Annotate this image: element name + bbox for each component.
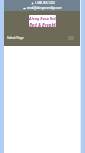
staticText: Bed & Breakfast bbox=[29, 22, 56, 27]
staticText: 1-888-555-1234 bbox=[35, 1, 55, 5]
button[interactable]: email@alongroseridge.com bbox=[23, 6, 62, 10]
staticText: email@alongroseridge.com bbox=[27, 6, 62, 10]
staticText: Select Page bbox=[7, 36, 24, 40]
button[interactable]: Along Rose Ridge bbox=[29, 15, 56, 27]
staticText: Along Rose Ridge bbox=[29, 16, 56, 21]
button[interactable]: 1-888-555-1234 bbox=[31, 1, 55, 5]
